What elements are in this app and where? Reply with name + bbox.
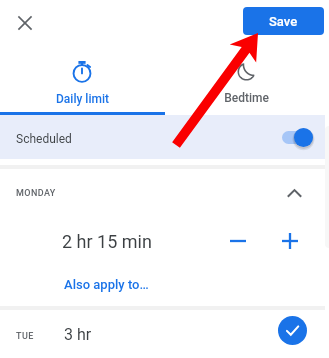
staticText: 2 hr 15 min xyxy=(62,231,152,252)
staticText: 3 hr xyxy=(64,325,92,344)
button[interactable]: MONDAY xyxy=(0,169,329,207)
staticText: TUE xyxy=(16,331,34,342)
button[interactable]: Daily limit xyxy=(0,55,164,111)
button[interactable]: Collapse xyxy=(282,181,306,205)
staticText: MONDAY xyxy=(16,188,56,199)
button[interactable]: Also apply to… xyxy=(56,273,157,296)
button[interactable]: Bedtime xyxy=(164,55,329,111)
staticText: Bedtime xyxy=(224,91,269,105)
button[interactable]: Close xyxy=(11,9,39,37)
staticText: Daily limit xyxy=(56,92,109,106)
button[interactable]: Scheduled xyxy=(0,115,325,159)
button[interactable]: Increase time xyxy=(274,225,306,257)
staticText: Also apply to… xyxy=(64,277,149,292)
button[interactable]: TUE xyxy=(0,309,329,358)
button[interactable]: Selected xyxy=(278,316,307,345)
staticText: Save xyxy=(269,14,298,29)
staticText: Scheduled xyxy=(16,132,72,146)
button[interactable]: Decrease time xyxy=(222,225,254,257)
button[interactable]: Save xyxy=(243,7,324,35)
